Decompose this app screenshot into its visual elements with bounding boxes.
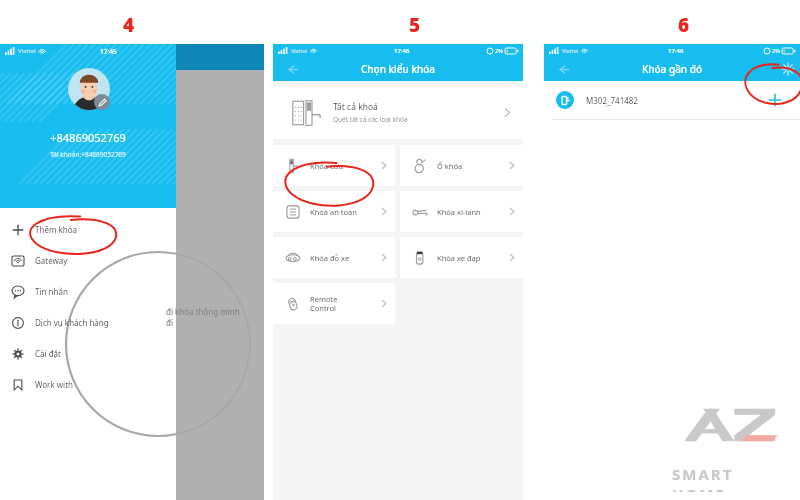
button[interactable]: Back — [550, 57, 576, 81]
button[interactable]: Edit profile — [94, 94, 110, 110]
staticText: 6 — [678, 12, 690, 36]
staticText: Viettel — [562, 47, 579, 54]
staticText: Khóa đỗ xe — [310, 253, 350, 263]
staticText: Remote Control — [310, 294, 338, 313]
button[interactable]: Thêm khóa — [0, 214, 176, 245]
staticText: 2% — [772, 47, 780, 54]
staticText: Work with — [35, 379, 73, 390]
staticText: Viettel — [18, 47, 36, 55]
staticText: Tin nhắn — [35, 286, 68, 297]
staticText: Tài khoản:+84869052769 — [0, 150, 176, 159]
staticText: Viettel — [291, 47, 308, 54]
button[interactable]: Refresh — [776, 57, 800, 81]
button[interactable]: Back — [279, 57, 305, 81]
button[interactable]: Khóa xi-lanh — [400, 191, 523, 232]
staticText: Khóa xi-lanh — [437, 207, 481, 217]
button[interactable]: Khóa xe đạp — [400, 237, 523, 278]
button[interactable]: Work with — [0, 369, 176, 400]
button[interactable] — [68, 68, 110, 110]
staticText: Khóa xe đạp — [437, 253, 481, 263]
button[interactable]: Cài đặt — [0, 338, 176, 369]
staticText: 17:45 — [100, 47, 117, 56]
staticText: Khóa gần đó — [544, 62, 800, 76]
staticText: đi khóa thông minh đi — [166, 306, 240, 328]
staticText: Khóa cửa — [310, 161, 343, 171]
staticText: 4 — [123, 12, 135, 36]
staticText: Dịch vụ khách hàng — [35, 317, 109, 328]
staticText: Quét tất cả các loại khóa — [333, 115, 408, 124]
staticText: +84869052769 — [0, 130, 176, 145]
button[interactable]: Ổ khóa — [400, 145, 523, 186]
staticText: 2% — [495, 47, 503, 54]
staticText: Khóa an toàn — [310, 207, 357, 217]
button[interactable]: Add lock — [760, 85, 790, 115]
staticText: 5 — [409, 12, 421, 36]
staticText: Thêm khóa — [35, 224, 78, 235]
staticText: Gateway — [35, 255, 68, 266]
button[interactable]: Tất cả khoá — [273, 86, 523, 139]
button[interactable]: Khóa cửa — [273, 145, 395, 186]
button[interactable]: Dịch vụ khách hàng — [0, 307, 176, 338]
button[interactable]: Gateway — [0, 245, 176, 276]
button[interactable]: Remote Control — [273, 283, 395, 324]
staticText: Cài đặt — [35, 348, 61, 359]
button[interactable]: M302_741482 — [544, 81, 800, 119]
staticText: 17:46 — [394, 47, 410, 55]
staticText: Ổ khóa — [437, 161, 463, 171]
staticText: M302_741482 — [586, 95, 638, 106]
button[interactable]: Khóa an toàn — [273, 191, 395, 232]
staticText: Tất cả khoá — [333, 101, 378, 113]
button[interactable]: Tin nhắn — [0, 276, 176, 307]
staticText: 17:46 — [668, 47, 684, 55]
button[interactable]: Khóa đỗ xe — [273, 237, 395, 278]
staticText: Chọn kiểu khóa — [273, 62, 523, 76]
staticText: SMART HOME — [672, 464, 792, 492]
